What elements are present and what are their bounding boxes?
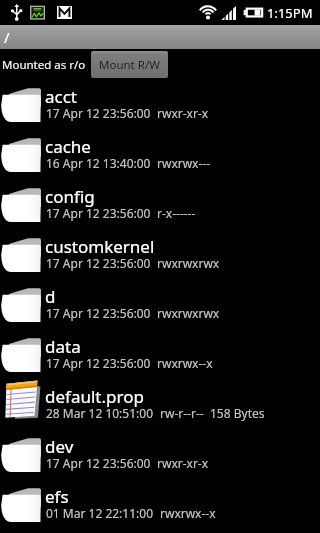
staticText: rwxr-xr-x: [157, 455, 209, 471]
staticText: 17 Apr 12 23:56:00: [46, 105, 151, 121]
staticText: 17 Apr 12 23:56:00: [46, 305, 151, 321]
staticText: 1:15PM: [267, 4, 313, 22]
staticText: acct: [45, 85, 77, 108]
button[interactable]: data: [0, 330, 320, 380]
staticText: 17 Apr 12 23:56:00: [46, 355, 151, 371]
staticText: 01 Mar 12 22:11:00: [46, 505, 154, 521]
staticText: rwxrwx--x: [160, 505, 216, 521]
staticText: customkernel: [45, 235, 155, 258]
staticText: rwxrwx--x: [157, 355, 213, 371]
staticText: 16 Apr 12 13:40:00: [46, 155, 151, 171]
staticText: Mounted as r/o: [2, 57, 86, 73]
staticText: d: [45, 285, 56, 308]
button[interactable]: customkernel: [0, 230, 320, 280]
staticText: 28 Mar 12 10:51:00: [46, 405, 154, 421]
staticText: /: [4, 27, 10, 47]
staticText: efs: [45, 485, 69, 508]
staticText: 158 Bytes: [210, 405, 265, 421]
staticText: data: [45, 335, 81, 358]
staticText: rw-r--r--: [160, 405, 204, 421]
staticText: config: [45, 185, 95, 208]
button[interactable]: cache: [0, 130, 320, 180]
staticText: Mount R/W: [99, 57, 160, 73]
staticText: 17 Apr 12 23:56:00: [46, 455, 151, 471]
staticText: rwxr-xr-x: [157, 105, 209, 121]
staticText: 17 Apr 12 23:56:00: [46, 205, 151, 221]
staticText: rwxrwxrwx: [157, 305, 220, 321]
staticText: dev: [45, 435, 74, 458]
button[interactable]: efs: [0, 480, 320, 530]
button[interactable]: acct: [0, 80, 320, 130]
button[interactable]: d: [0, 280, 320, 330]
staticText: r-x------: [157, 205, 196, 221]
button[interactable]: config: [0, 180, 320, 230]
button[interactable]: default.prop: [0, 380, 320, 430]
staticText: rwxrwxrwx: [157, 255, 220, 271]
button[interactable]: /: [0, 25, 320, 49]
button[interactable]: Mount R/W: [91, 51, 168, 78]
staticText: cache: [45, 135, 91, 158]
staticText: rwxrwx---: [157, 155, 211, 171]
staticText: default.prop: [45, 385, 144, 408]
staticText: 17 Apr 12 23:56:00: [46, 255, 151, 271]
button[interactable]: dev: [0, 430, 320, 480]
